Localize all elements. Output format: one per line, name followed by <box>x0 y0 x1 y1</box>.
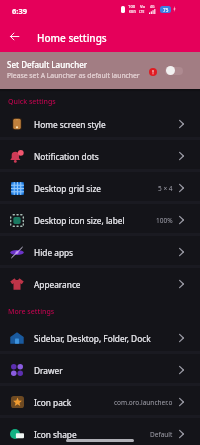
staticText: Desktop icon size, label <box>34 215 156 226</box>
staticText: 6:39 <box>12 6 27 16</box>
staticText: Hide apps <box>34 247 179 258</box>
staticText: Desktop grid size <box>34 183 158 194</box>
button[interactable]: Appearance <box>0 268 200 300</box>
staticText: Vo <box>140 4 145 10</box>
staticText: 100% <box>156 216 173 225</box>
staticText: 75 <box>163 7 169 13</box>
staticText: Home settings <box>37 31 107 45</box>
button[interactable]: Desktop grid size <box>0 172 200 204</box>
staticText: Icon pack <box>34 397 114 408</box>
staticText: Appearance <box>34 279 179 290</box>
staticText: 4G <box>150 4 155 9</box>
button[interactable]: Set default launcher toggle <box>165 67 183 75</box>
button[interactable]: Back <box>5 27 24 46</box>
button[interactable]: Drawer <box>0 354 200 386</box>
button[interactable]: Sidebar, Desktop, Folder, Dock <box>0 322 200 354</box>
button[interactable]: Desktop icon size, label <box>0 204 200 236</box>
button[interactable]: Home screen style <box>0 108 200 140</box>
button[interactable]: Hide apps <box>0 236 200 268</box>
button[interactable]: Icon pack <box>0 386 200 418</box>
staticText: LTE <box>139 10 145 14</box>
staticText: Set Default Launcher <box>7 59 88 70</box>
staticText: Default <box>150 430 173 439</box>
staticText: Quick settings <box>8 97 56 107</box>
staticText: More settings <box>8 307 55 317</box>
staticText: Sidebar, Desktop, Folder, Dock <box>34 333 179 344</box>
button[interactable]: Notification dots <box>0 140 200 172</box>
staticText: Icon shape <box>34 429 150 440</box>
staticText: 5 × 4 <box>158 184 173 193</box>
button[interactable]: Icon shape <box>0 418 200 445</box>
staticText: com.oro.launcher.o <box>114 398 173 407</box>
button[interactable]: Set Default Launcher <box>0 52 200 89</box>
staticText: Home screen style <box>34 119 179 130</box>
staticText: KB/S <box>129 10 136 14</box>
staticText: Please set A Launcher as default launche… <box>7 71 140 80</box>
staticText: Drawer <box>34 365 179 376</box>
staticText: Notification dots <box>34 151 179 162</box>
staticText: 100 <box>128 4 136 10</box>
